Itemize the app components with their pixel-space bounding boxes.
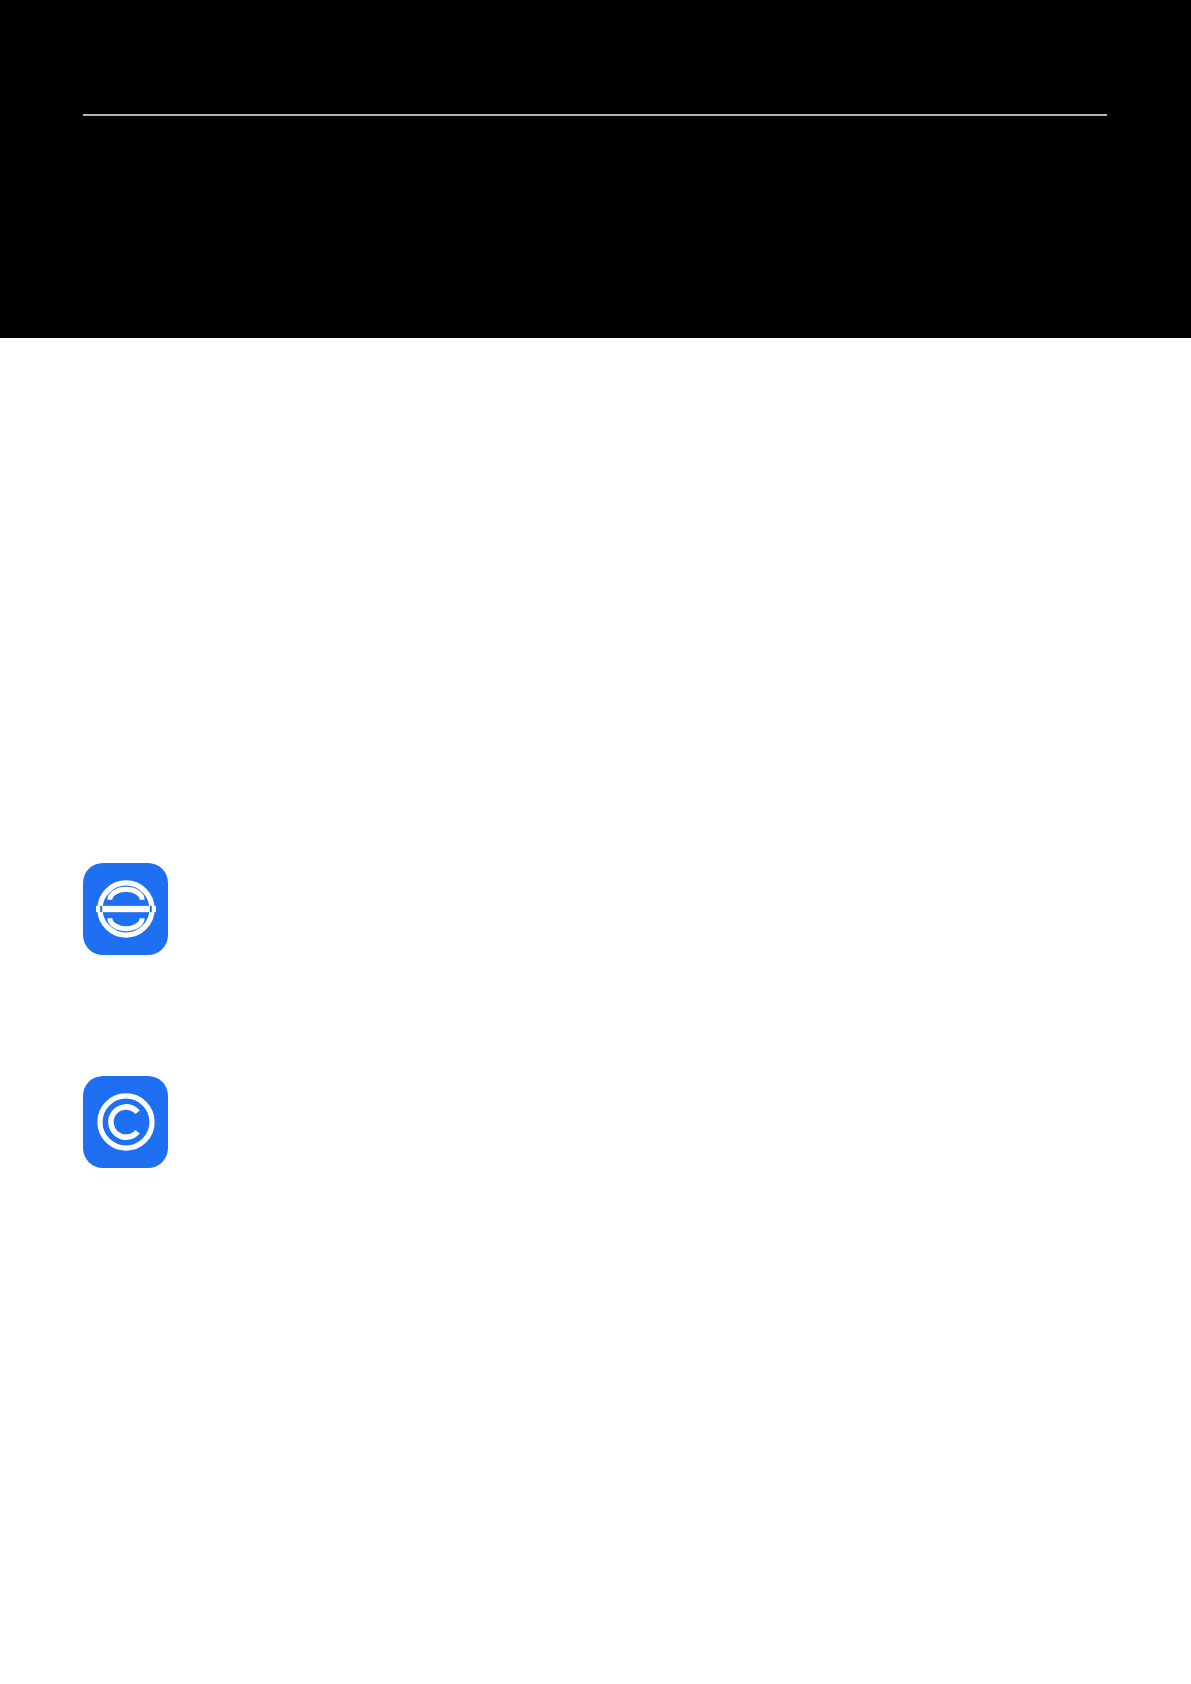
button[interactable]: Copyright app icon (83, 1076, 168, 1168)
button[interactable]: Sunrise app icon (83, 863, 168, 955)
